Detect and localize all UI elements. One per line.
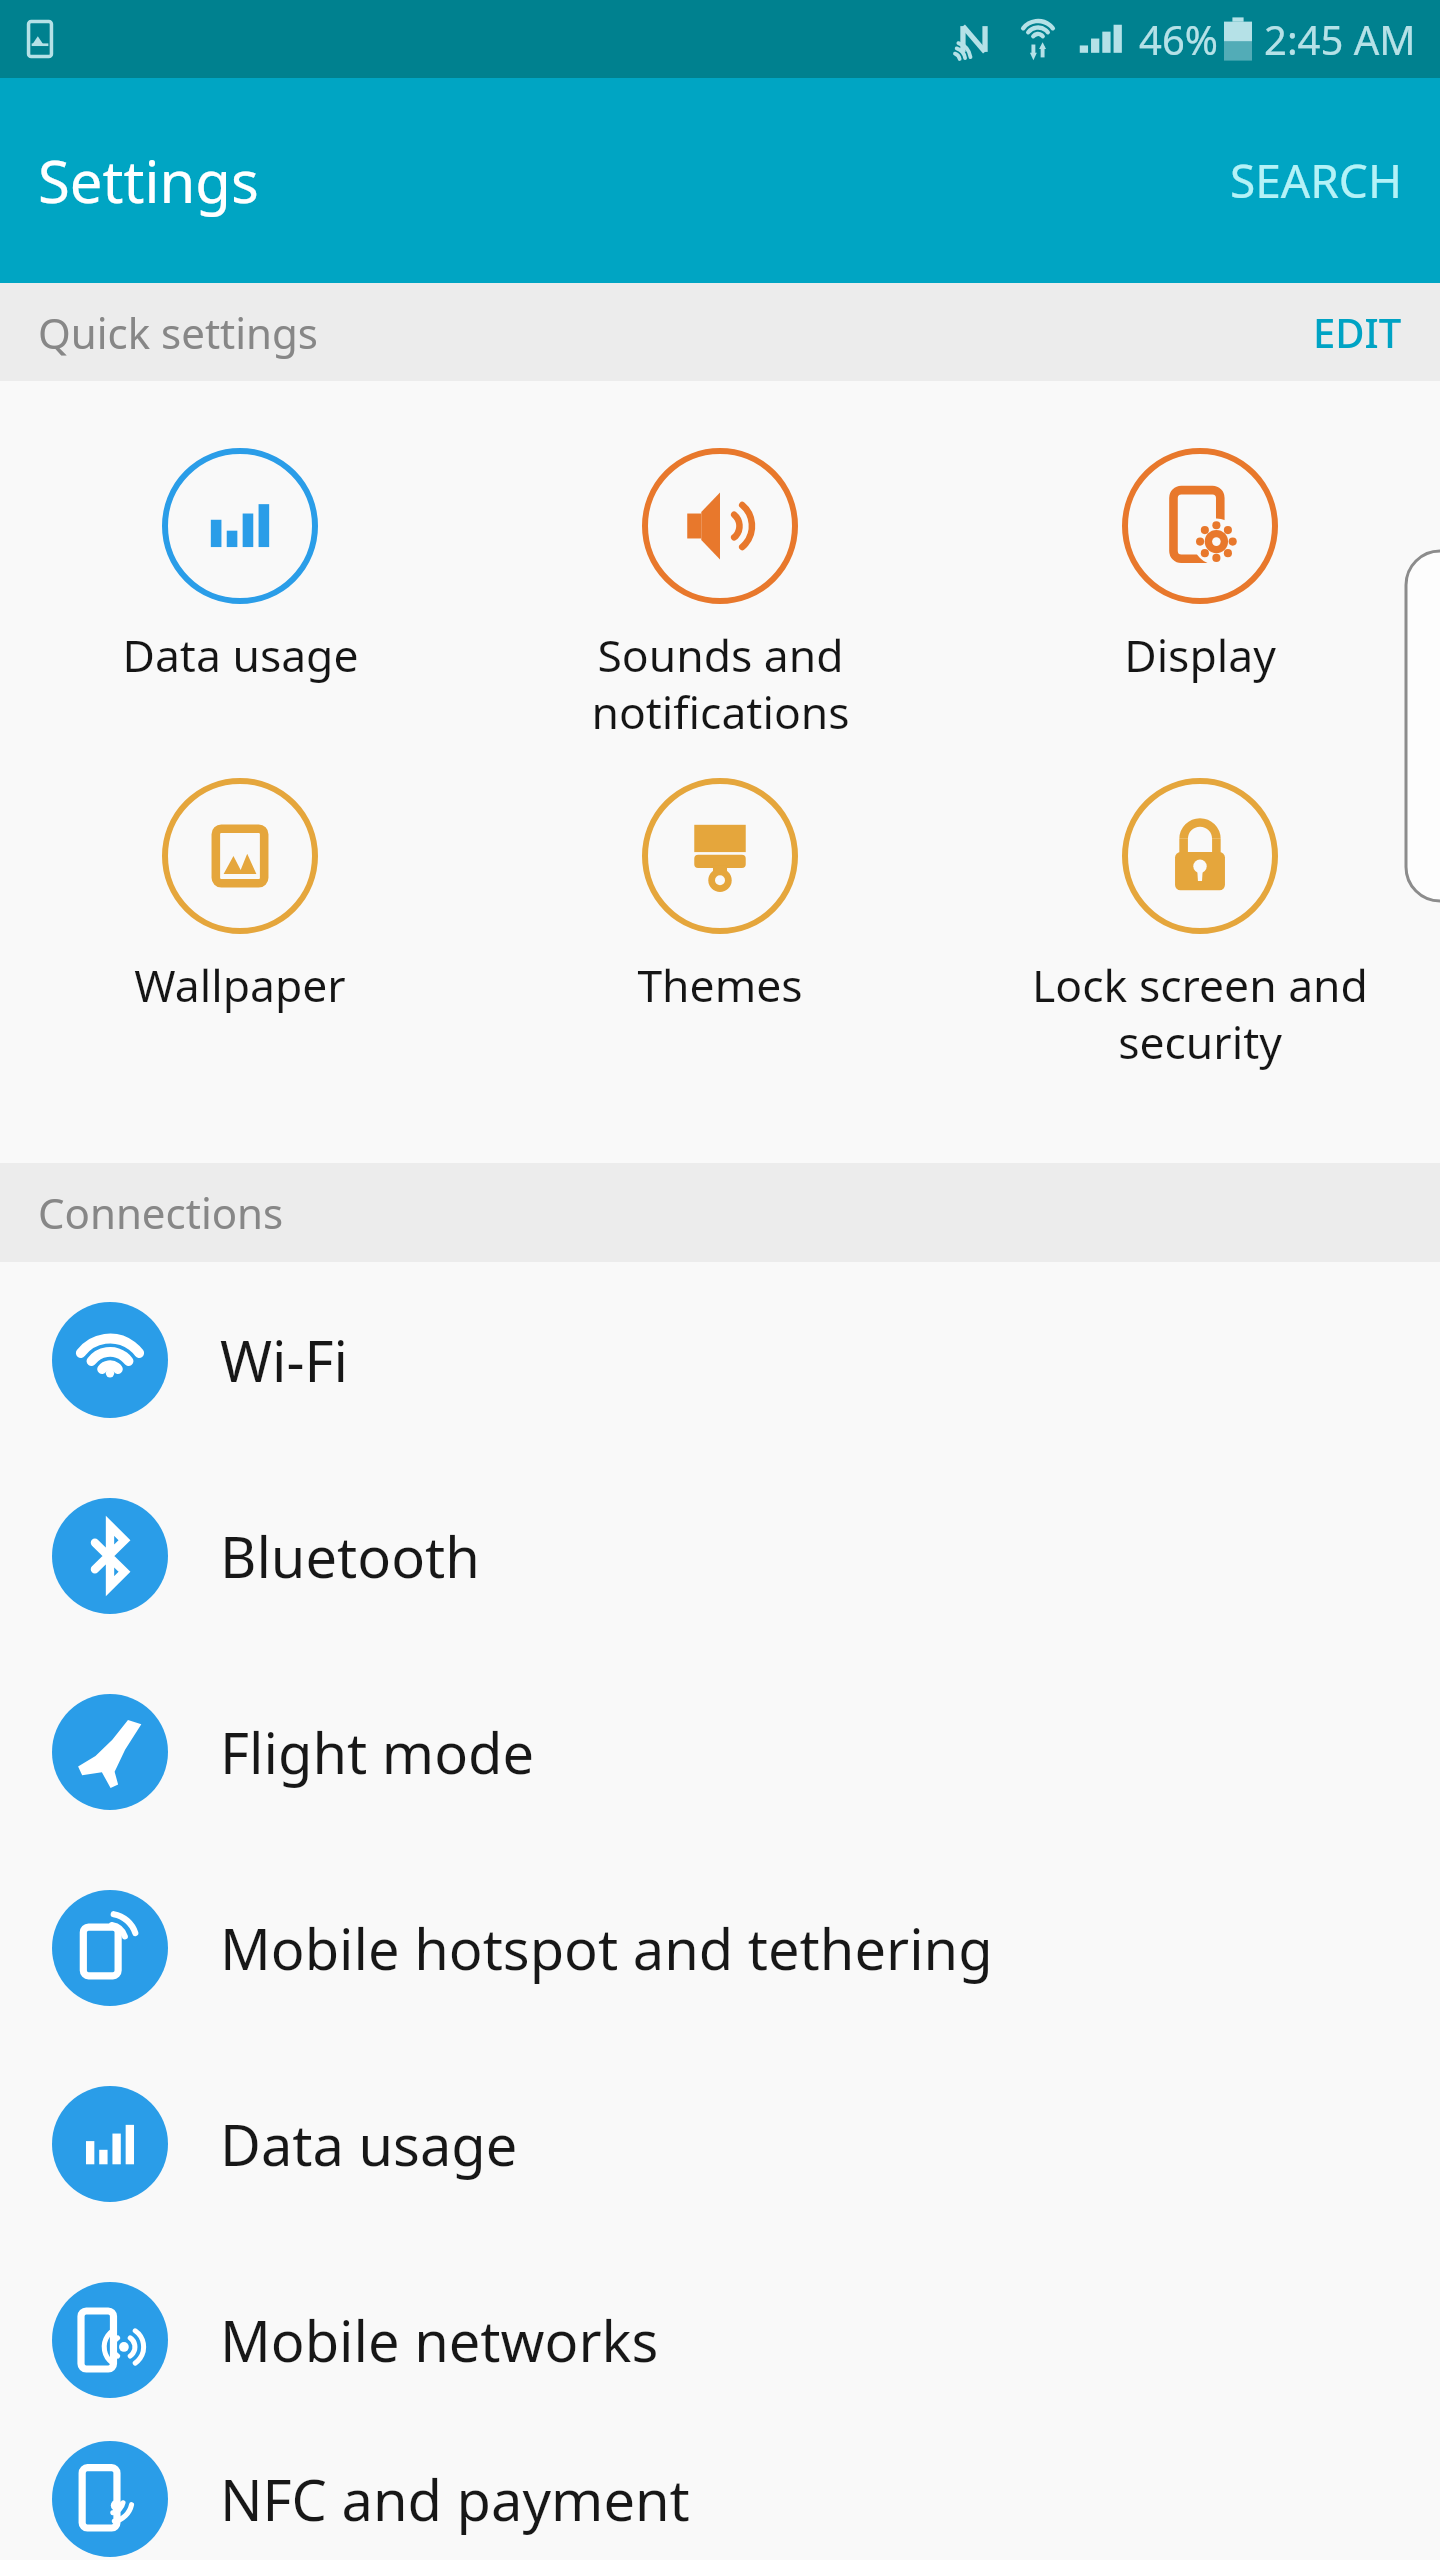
button[interactable]: EDIT bbox=[1275, 289, 1440, 375]
staticText: Themes bbox=[637, 954, 803, 1015]
button[interactable]: SEARCH bbox=[1192, 119, 1440, 242]
staticText: Lock screen and security bbox=[1032, 954, 1368, 1072]
staticText: SEARCH bbox=[1230, 149, 1402, 212]
staticText: Bluetooth bbox=[220, 1518, 480, 1594]
button[interactable]: Data usage bbox=[0, 448, 480, 685]
button[interactable]: Mobile networks bbox=[0, 2242, 1440, 2438]
button[interactable]: Sounds and notifications bbox=[480, 448, 960, 742]
staticText: Wallpaper bbox=[134, 954, 346, 1015]
button[interactable]: Wi-Fi bbox=[0, 1262, 1440, 1458]
staticText: Mobile hotspot and tethering bbox=[220, 1910, 993, 1986]
other: Screenshot bbox=[18, 17, 62, 61]
staticText: Data usage bbox=[220, 2106, 518, 2182]
button[interactable]: Bluetooth bbox=[0, 1458, 1440, 1654]
staticText: Quick settings bbox=[38, 304, 318, 361]
staticText: Wi-Fi bbox=[220, 1322, 349, 1398]
staticText: 46% bbox=[1139, 12, 1218, 66]
button[interactable]: Wallpaper bbox=[0, 778, 480, 1015]
staticText: 2:45 AM bbox=[1264, 12, 1416, 66]
staticText: Flight mode bbox=[220, 1714, 535, 1790]
staticText: Mobile networks bbox=[220, 2302, 659, 2378]
staticText: EDIT bbox=[1313, 305, 1402, 359]
staticText: Sounds and notifications bbox=[591, 624, 850, 742]
staticText: Display bbox=[1124, 624, 1276, 685]
button[interactable]: Flight mode bbox=[0, 1654, 1440, 1850]
button[interactable]: Themes bbox=[480, 778, 960, 1015]
staticText: Data usage bbox=[122, 624, 359, 685]
staticText: NFC and payment bbox=[220, 2461, 690, 2537]
staticText: Settings bbox=[38, 141, 259, 220]
button[interactable]: Data usage bbox=[0, 2046, 1440, 2242]
button[interactable]: NFC and payment bbox=[0, 2438, 1440, 2560]
button[interactable]: Mobile hotspot and tethering bbox=[0, 1850, 1440, 2046]
button[interactable]: Display bbox=[960, 448, 1440, 685]
staticText: Connections bbox=[38, 1184, 284, 1241]
button[interactable]: Lock screen and security bbox=[960, 778, 1440, 1072]
